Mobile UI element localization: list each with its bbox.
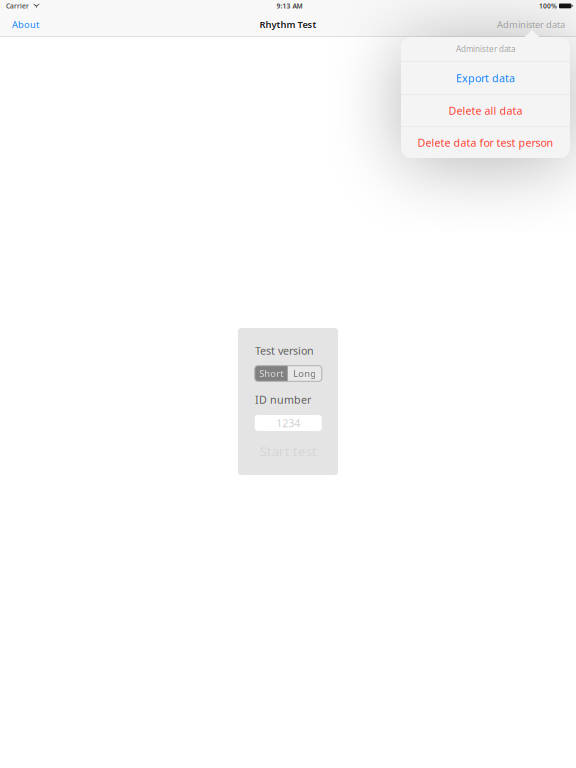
staticText: Export data <box>456 71 515 85</box>
staticText: 100% <box>539 1 557 10</box>
button[interactable]: Long <box>288 366 322 381</box>
staticText: Long <box>293 367 316 380</box>
staticText: Administer data <box>456 44 515 54</box>
staticText: Test version <box>255 343 314 358</box>
button[interactable]: Export data <box>401 62 570 94</box>
staticText: Carrier <box>6 1 29 10</box>
staticText: 1234 <box>276 416 300 430</box>
staticText: ID number <box>255 392 311 407</box>
staticText: Rhythm Test <box>259 18 316 31</box>
button[interactable]: About <box>0 12 47 37</box>
staticText: Administer data <box>497 18 565 31</box>
staticText: 9:13 AM <box>276 1 302 10</box>
button[interactable]: Delete all data <box>401 95 570 126</box>
staticText: Start test <box>260 442 317 460</box>
staticText: About <box>12 18 39 31</box>
staticText: Delete all data <box>448 103 522 118</box>
staticText: Delete data for test person <box>417 135 553 150</box>
button[interactable]: Short <box>255 366 288 381</box>
button[interactable]: Start test <box>255 443 322 459</box>
button[interactable]: Administer data <box>489 12 576 37</box>
button[interactable]: Delete data for test person <box>401 127 570 158</box>
staticText: Short <box>259 367 283 380</box>
